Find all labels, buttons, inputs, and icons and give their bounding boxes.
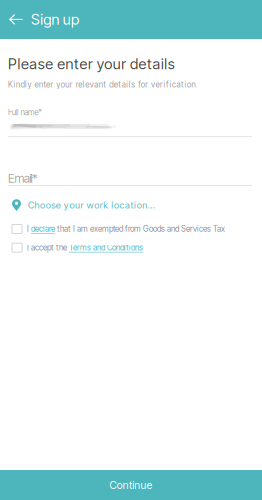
staticText: I accept the Terms and Conditions — [27, 243, 143, 252]
staticText: I declare that I am exempted from Goods … — [27, 224, 225, 234]
button[interactable]: I declare that I am exempted from Goods … — [8, 211, 252, 234]
button[interactable]: Back — [0, 0, 262, 39]
staticText: Sign up — [31, 11, 79, 28]
staticText: Kindly enter your relevant details for v… — [8, 80, 195, 89]
button[interactable]: Choose your work location > — [8, 186, 252, 211]
staticText: Full name* — [8, 107, 42, 117]
staticText: Email* — [8, 171, 37, 186]
button[interactable]: I accept the Terms and Conditions — [8, 234, 252, 252]
staticText: Choose your work location > — [28, 199, 156, 211]
staticText: Continue — [109, 478, 152, 491]
button[interactable]: Continue — [0, 470, 262, 500]
staticText: Please enter your details — [8, 55, 175, 73]
